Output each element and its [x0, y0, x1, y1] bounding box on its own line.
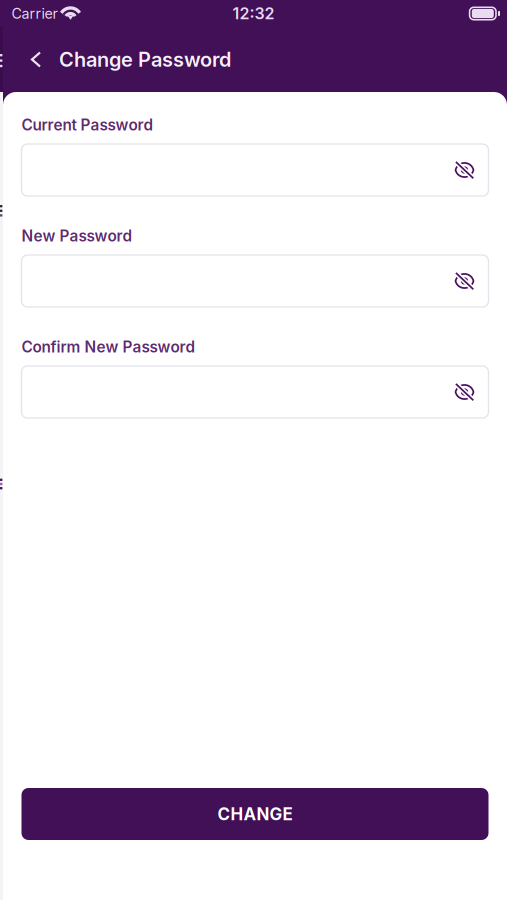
button[interactable]: Confirm New Password	[21, 366, 488, 418]
staticText: Confirm New Password	[21, 338, 195, 356]
staticText: Change Password	[59, 47, 231, 72]
button[interactable]: New Password	[21, 255, 488, 307]
staticText: CHANGE	[217, 804, 292, 824]
button[interactable]: Back	[21, 39, 51, 79]
staticText: New Password	[21, 227, 132, 245]
staticText: Current Password	[21, 116, 153, 134]
staticText: Carrier	[11, 5, 57, 22]
staticText: 12:32	[232, 4, 274, 23]
button[interactable]: Current Password	[21, 144, 488, 196]
button[interactable]: CHANGE	[21, 788, 488, 840]
